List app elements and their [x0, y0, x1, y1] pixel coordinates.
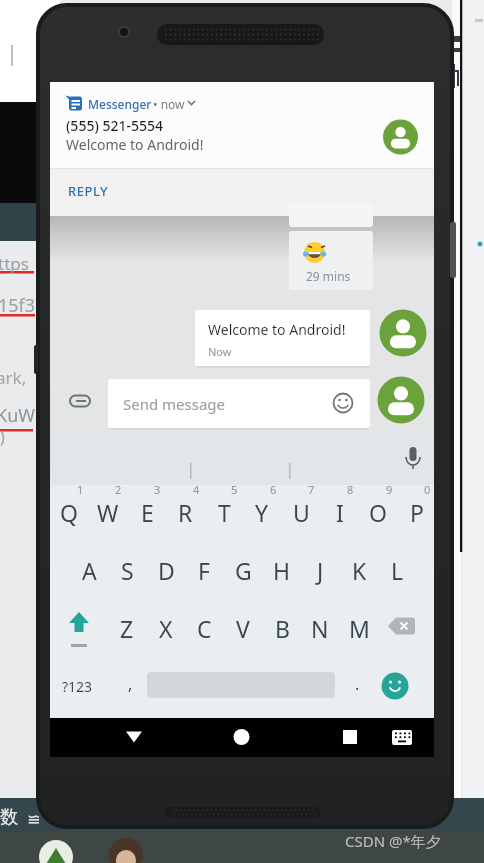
staticText: Now [208, 344, 232, 359]
staticText: ?123 [62, 677, 93, 696]
staticText: ) [0, 426, 5, 448]
button[interactable]: Y [243, 485, 281, 539]
staticText: 5 [231, 482, 238, 497]
button[interactable]: W [89, 485, 127, 539]
button[interactable]: L [378, 543, 416, 597]
staticText: Welcome to Android! [66, 135, 204, 154]
button[interactable] [336, 722, 364, 752]
button[interactable]: X [147, 601, 185, 655]
button[interactable] [381, 672, 409, 700]
staticText: N [311, 613, 329, 644]
staticText: Z [120, 613, 134, 644]
button[interactable] [64, 598, 96, 654]
staticText: A [82, 555, 97, 586]
button[interactable]: D [147, 543, 185, 597]
button[interactable] [226, 722, 258, 752]
staticText: J [317, 555, 324, 586]
staticText: ≌ [27, 810, 41, 829]
button[interactable]: B [263, 601, 301, 655]
button[interactable]: A [70, 543, 108, 597]
button[interactable]: Z [108, 601, 146, 655]
staticText: 3 [154, 482, 161, 497]
button[interactable]: F [185, 543, 223, 597]
button[interactable]: U [282, 485, 320, 539]
button[interactable] [388, 598, 434, 654]
staticText: 9 [386, 482, 393, 497]
staticText: . [355, 673, 360, 695]
button[interactable] [118, 722, 150, 752]
staticText: , [128, 673, 133, 695]
staticText: 15f3 [0, 293, 36, 318]
staticText: U [293, 497, 310, 528]
staticText: K [352, 555, 367, 586]
button[interactable]: H [263, 543, 301, 597]
staticText: CSDN @*年夕 [345, 831, 441, 851]
staticText: S [121, 555, 134, 586]
staticText: F [198, 555, 210, 586]
staticText: Y [255, 497, 269, 528]
staticText: REPLY [68, 182, 109, 200]
staticText: KuW [0, 403, 36, 428]
staticText: L [391, 555, 404, 586]
button[interactable]: C [185, 601, 223, 655]
button[interactable]: REPLY [58, 178, 118, 204]
button[interactable]: T [205, 485, 243, 539]
staticText: • now [153, 96, 185, 112]
staticText: 1 [77, 482, 84, 497]
staticText: ark, [0, 366, 27, 389]
staticText: C [197, 613, 212, 644]
staticText: I [336, 497, 344, 528]
staticText: B [275, 613, 290, 644]
staticText: 4 [193, 482, 200, 497]
staticText: W [97, 497, 119, 528]
button[interactable]: V [224, 601, 262, 655]
staticText: 29 mins [306, 268, 351, 284]
button[interactable]: J [301, 543, 339, 597]
button[interactable] [402, 445, 426, 473]
staticText: Welcome to Android! [208, 320, 346, 339]
button[interactable]: S [108, 543, 146, 597]
staticText: ttps [0, 252, 29, 275]
staticText: 7 [308, 482, 315, 497]
button[interactable]: Send message [108, 379, 370, 428]
button[interactable] [147, 660, 335, 710]
staticText: 数 [0, 806, 18, 829]
staticText: M [349, 613, 370, 644]
button[interactable]: . [338, 657, 376, 711]
staticText: X [159, 613, 173, 644]
button[interactable]: N [301, 601, 339, 655]
staticText: R [178, 497, 193, 528]
staticText: E [141, 497, 154, 528]
staticText: D [158, 555, 175, 586]
button[interactable]: M [340, 601, 378, 655]
staticText: Messenger [88, 96, 152, 112]
staticText: Send message [123, 394, 226, 414]
staticText: V [236, 613, 250, 644]
button[interactable]: O [359, 485, 397, 539]
staticText: G [235, 555, 252, 586]
staticText: T [218, 497, 231, 528]
button[interactable]: R [166, 485, 204, 539]
button[interactable]: P [398, 485, 436, 539]
staticText: Q [60, 497, 78, 528]
staticText: P [410, 497, 424, 528]
staticText: 6 [270, 482, 277, 497]
button[interactable]: G [224, 543, 262, 597]
button[interactable]: , [111, 657, 149, 711]
button[interactable]: K [340, 543, 378, 597]
button[interactable] [390, 726, 414, 750]
staticText: (555) 521-5554 [66, 116, 163, 135]
button[interactable]: E [128, 485, 166, 539]
staticText: H [273, 555, 291, 586]
staticText: O [369, 497, 387, 528]
staticText: 0 [424, 482, 431, 497]
button[interactable]: I [321, 485, 359, 539]
staticText: 2 [115, 482, 122, 497]
button[interactable]: Q [50, 485, 88, 539]
staticText: 8 [347, 482, 354, 497]
